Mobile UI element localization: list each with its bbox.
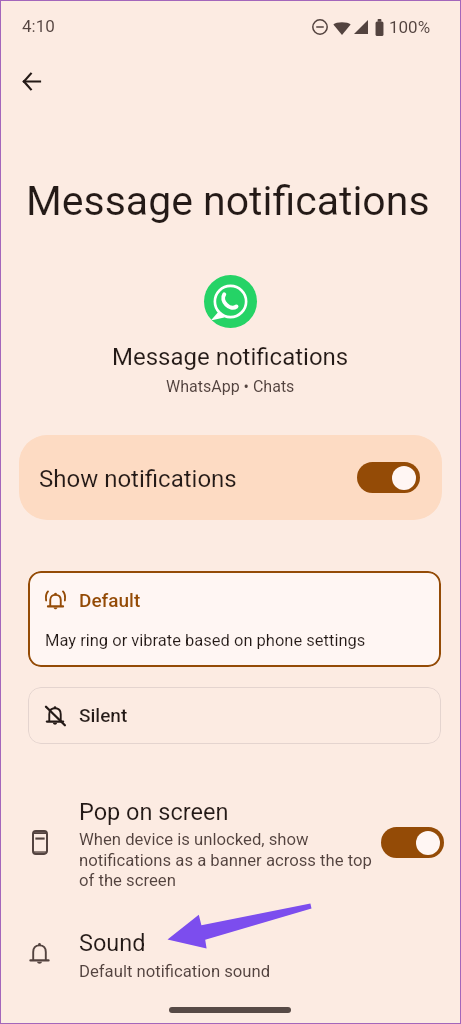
staticText: 4:10	[22, 16, 55, 36]
staticText: WhatsApp • Chats	[166, 377, 295, 396]
button[interactable]: Silent	[28, 687, 441, 744]
staticText: Silent	[79, 704, 128, 726]
staticText: Message notifications	[26, 177, 430, 225]
staticText: Sound	[79, 929, 146, 957]
staticText: Default	[79, 589, 141, 611]
staticText: May ring or vibrate based on phone setti…	[45, 631, 366, 650]
staticText: When device is unlocked, show notificati…	[79, 830, 379, 890]
staticText: Message notifications	[112, 343, 349, 371]
button[interactable]: Toggle on	[357, 462, 420, 493]
button[interactable]: Pop on screen	[0, 780, 461, 908]
button[interactable]: Show notifications	[19, 435, 442, 520]
button[interactable]: Sound	[0, 915, 461, 990]
staticText: Show notifications	[39, 465, 237, 493]
staticText: Default notification sound	[79, 962, 271, 982]
staticText: Pop on screen	[79, 798, 229, 826]
button[interactable]: Back	[7, 57, 55, 105]
button[interactable]: Toggle on	[381, 827, 444, 858]
button[interactable]: Default	[28, 571, 441, 667]
staticText: 100%	[389, 17, 431, 37]
